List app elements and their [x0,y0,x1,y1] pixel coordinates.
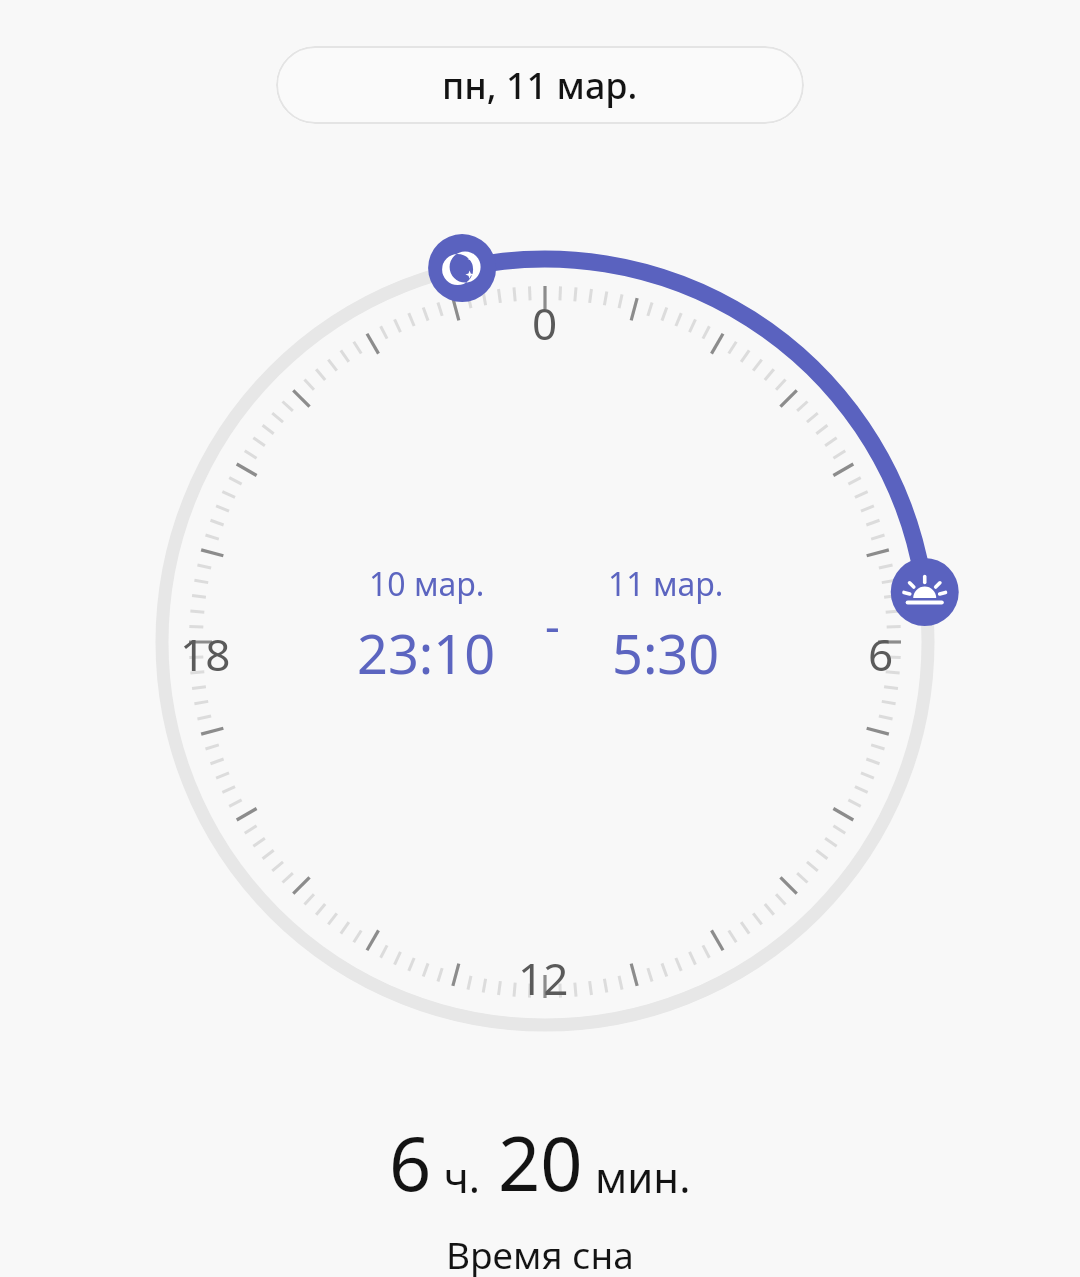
staticText: - [545,593,560,656]
staticText: 20 [498,1112,583,1213]
staticText: 6 [868,624,894,684]
staticText: 12 [518,948,569,1008]
staticText: 11 мар. [608,562,724,606]
staticText: 23:10 [357,616,496,690]
staticText: мин. [595,1148,691,1205]
staticText: Время сна [446,1229,634,1277]
staticText: 18 [180,624,231,684]
button[interactable]: пн, 11 мар. [276,46,804,124]
staticText: ч. [444,1148,480,1205]
staticText: 0 [532,293,558,353]
staticText: 6 [389,1112,432,1213]
staticText: пн, 11 мар. [442,61,638,110]
staticText: 10 мар. [369,562,485,606]
other: Sleep duration dial [0,0,1080,1277]
staticText: 5:30 [612,616,720,690]
